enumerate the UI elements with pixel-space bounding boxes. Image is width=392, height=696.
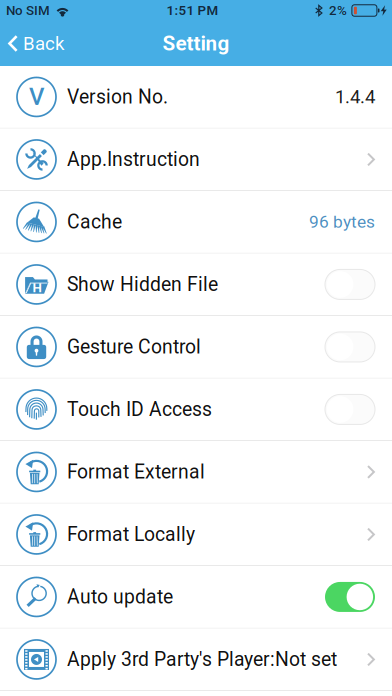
staticText: Gesture Control bbox=[67, 336, 201, 358]
button[interactable]: Cache bbox=[0, 191, 392, 253]
button[interactable]: Auto update bbox=[0, 566, 392, 628]
button[interactable]: Apply 3rd Party's Player:Not set bbox=[0, 628, 392, 691]
staticText: Setting bbox=[162, 31, 229, 56]
staticText: 1.4.4 bbox=[335, 86, 375, 108]
button[interactable]: V bbox=[0, 66, 392, 128]
staticText: Show Hidden File bbox=[67, 273, 218, 296]
staticText: Touch ID Access bbox=[67, 398, 212, 421]
button[interactable]: H bbox=[0, 253, 392, 316]
staticText: App.Instruction bbox=[67, 148, 200, 171]
button[interactable]: App.Instruction bbox=[0, 128, 392, 191]
staticText: Back bbox=[23, 33, 64, 54]
staticText: V bbox=[29, 82, 44, 110]
button[interactable]: Touch ID Access bbox=[0, 378, 392, 441]
staticText: 2% bbox=[329, 3, 347, 18]
staticText: Cache bbox=[67, 211, 122, 233]
button[interactable]: Format Locally bbox=[0, 503, 392, 566]
staticText: Format External bbox=[67, 461, 205, 483]
staticText: Version No. bbox=[67, 86, 168, 108]
staticText: 96 bytes bbox=[309, 212, 375, 232]
button[interactable]: Format External bbox=[0, 441, 392, 503]
staticText: H bbox=[32, 280, 41, 295]
staticText: 1:51 PM bbox=[166, 3, 218, 18]
staticText: Apply 3rd Party's Player:Not set bbox=[67, 648, 337, 671]
staticText: No SIM bbox=[6, 3, 50, 18]
staticText: Format Locally bbox=[67, 523, 195, 546]
staticText: Auto update bbox=[67, 586, 173, 608]
button[interactable]: Gesture Control bbox=[0, 316, 392, 378]
button[interactable]: Back bbox=[0, 26, 74, 61]
